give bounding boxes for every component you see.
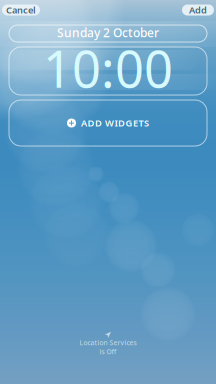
- staticText: Location Services: [79, 338, 136, 347]
- button[interactable]: Cancel: [2, 4, 40, 15]
- staticText: 10:00: [43, 34, 173, 102]
- staticText: Cancel: [6, 4, 36, 16]
- staticText: is Off: [99, 347, 116, 356]
- button[interactable]: ADD WIDGETS: [0, 100, 216, 146]
- staticText: ADD WIDGETS: [81, 117, 149, 129]
- staticText: Sunday 2 October: [57, 24, 159, 40]
- button[interactable]: Sunday 2 October: [0, 25, 216, 42]
- button[interactable]: Add: [182, 4, 214, 15]
- button[interactable]: 10:00: [0, 47, 216, 95]
- staticText: Add: [189, 4, 207, 16]
